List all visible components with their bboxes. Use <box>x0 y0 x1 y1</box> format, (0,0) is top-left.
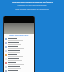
button[interactable] <box>4 37 34 41</box>
button[interactable] <box>4 53 34 57</box>
staticText: Material UI kits and prototypes <box>17 4 47 7</box>
button[interactable] <box>4 41 34 45</box>
button[interactable] <box>4 49 34 53</box>
button[interactable] <box>4 69 34 72</box>
button[interactable] <box>4 65 34 69</box>
button[interactable] <box>4 45 34 49</box>
staticText: Android app design mockups for teams <box>12 1 53 4</box>
button[interactable] <box>4 57 34 61</box>
button[interactable]: Inbox messages here <box>4 34 34 37</box>
staticText: Inbox messages here <box>9 34 29 37</box>
button[interactable] <box>4 61 34 65</box>
staticText: Free mobile templates to download <box>15 8 49 11</box>
